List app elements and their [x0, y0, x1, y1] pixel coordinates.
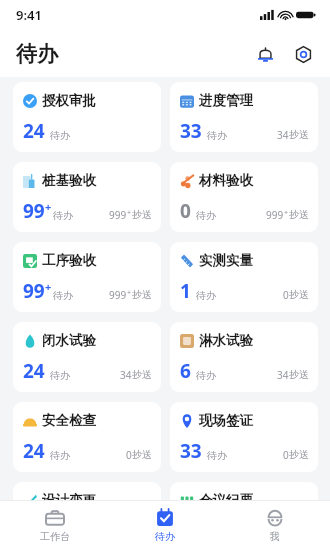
- staticText: 24: [23, 358, 45, 384]
- staticText: 待办: [207, 129, 227, 142]
- staticText: 1: [180, 278, 191, 304]
- staticText: 抄送: [289, 448, 309, 461]
- button[interactable]: 工作台: [0, 501, 110, 550]
- staticText: 抄送: [289, 368, 309, 381]
- staticText: 99: [23, 198, 45, 224]
- button[interactable]: 待办: [110, 501, 220, 550]
- staticText: 24: [23, 438, 45, 464]
- staticText: 待办: [196, 209, 216, 222]
- staticText: 待办: [50, 369, 70, 382]
- staticText: 淋水试验: [199, 332, 253, 349]
- staticText: 材料验收: [199, 172, 253, 189]
- staticText: 0: [283, 288, 289, 302]
- staticText: 9:41: [16, 6, 42, 24]
- staticText: 待办: [50, 449, 70, 462]
- staticText: 进度管理: [199, 92, 253, 109]
- staticText: 实测实量: [199, 252, 253, 269]
- staticText: 0: [126, 448, 132, 462]
- button[interactable]: Settings: [287, 38, 319, 70]
- button[interactable]: 设计变更: [13, 482, 161, 550]
- staticText: 待办: [16, 41, 58, 67]
- staticText: 34: [120, 368, 132, 382]
- staticText: 桩基验收: [42, 172, 96, 189]
- staticText: 闭水试验: [42, 332, 96, 349]
- staticText: 待办: [196, 289, 216, 302]
- staticText: 抄送: [132, 368, 152, 381]
- staticText: 抄送: [132, 448, 152, 461]
- staticText: 待办: [50, 129, 70, 142]
- staticText: 安全检查: [42, 412, 96, 429]
- staticText: 工序验收: [42, 252, 96, 269]
- staticText: 999: [109, 208, 127, 222]
- button[interactable]: 现场签证: [170, 402, 318, 472]
- staticText: 待办: [196, 369, 216, 382]
- staticText: +: [284, 208, 289, 218]
- button[interactable]: 会议纪要: [170, 482, 318, 550]
- staticText: 待办: [155, 530, 175, 543]
- staticText: 我: [270, 530, 280, 543]
- staticText: 抄送: [289, 128, 309, 141]
- staticText: 待办: [53, 289, 73, 302]
- button[interactable]: 我: [220, 501, 330, 550]
- button[interactable]: 桩基验收: [13, 162, 161, 232]
- staticText: 99: [23, 278, 45, 304]
- staticText: 抄送: [132, 288, 152, 301]
- staticText: 待办: [207, 449, 227, 462]
- staticText: 抄送: [132, 208, 152, 221]
- button[interactable]: 工序验收: [13, 242, 161, 312]
- staticText: 999: [266, 208, 284, 222]
- staticText: 999: [109, 288, 127, 302]
- staticText: +: [45, 279, 52, 294]
- button[interactable]: 进度管理: [170, 82, 318, 152]
- staticText: 24: [23, 118, 45, 144]
- staticText: 0: [283, 448, 289, 462]
- staticText: 34: [277, 368, 289, 382]
- button[interactable]: 实测实量: [170, 242, 318, 312]
- staticText: +: [127, 208, 132, 218]
- button[interactable]: Notifications: [249, 38, 281, 70]
- staticText: 现场签证: [199, 412, 253, 429]
- staticText: 待办: [53, 209, 73, 222]
- staticText: +: [45, 199, 52, 214]
- staticText: 33: [180, 438, 202, 464]
- button[interactable]: 授权审批: [13, 82, 161, 152]
- staticText: +: [127, 288, 132, 298]
- staticText: 抄送: [289, 208, 309, 221]
- button[interactable]: 材料验收: [170, 162, 318, 232]
- button[interactable]: 淋水试验: [170, 322, 318, 392]
- staticText: 授权审批: [42, 92, 96, 109]
- staticText: 工作台: [40, 530, 70, 543]
- staticText: 会议纪要: [199, 492, 253, 509]
- staticText: 6: [180, 358, 191, 384]
- staticText: 0: [180, 198, 191, 224]
- staticText: 设计变更: [42, 492, 96, 509]
- staticText: 34: [277, 128, 289, 142]
- button[interactable]: 安全检查: [13, 402, 161, 472]
- staticText: 抄送: [289, 288, 309, 301]
- staticText: 33: [180, 118, 202, 144]
- button[interactable]: 闭水试验: [13, 322, 161, 392]
